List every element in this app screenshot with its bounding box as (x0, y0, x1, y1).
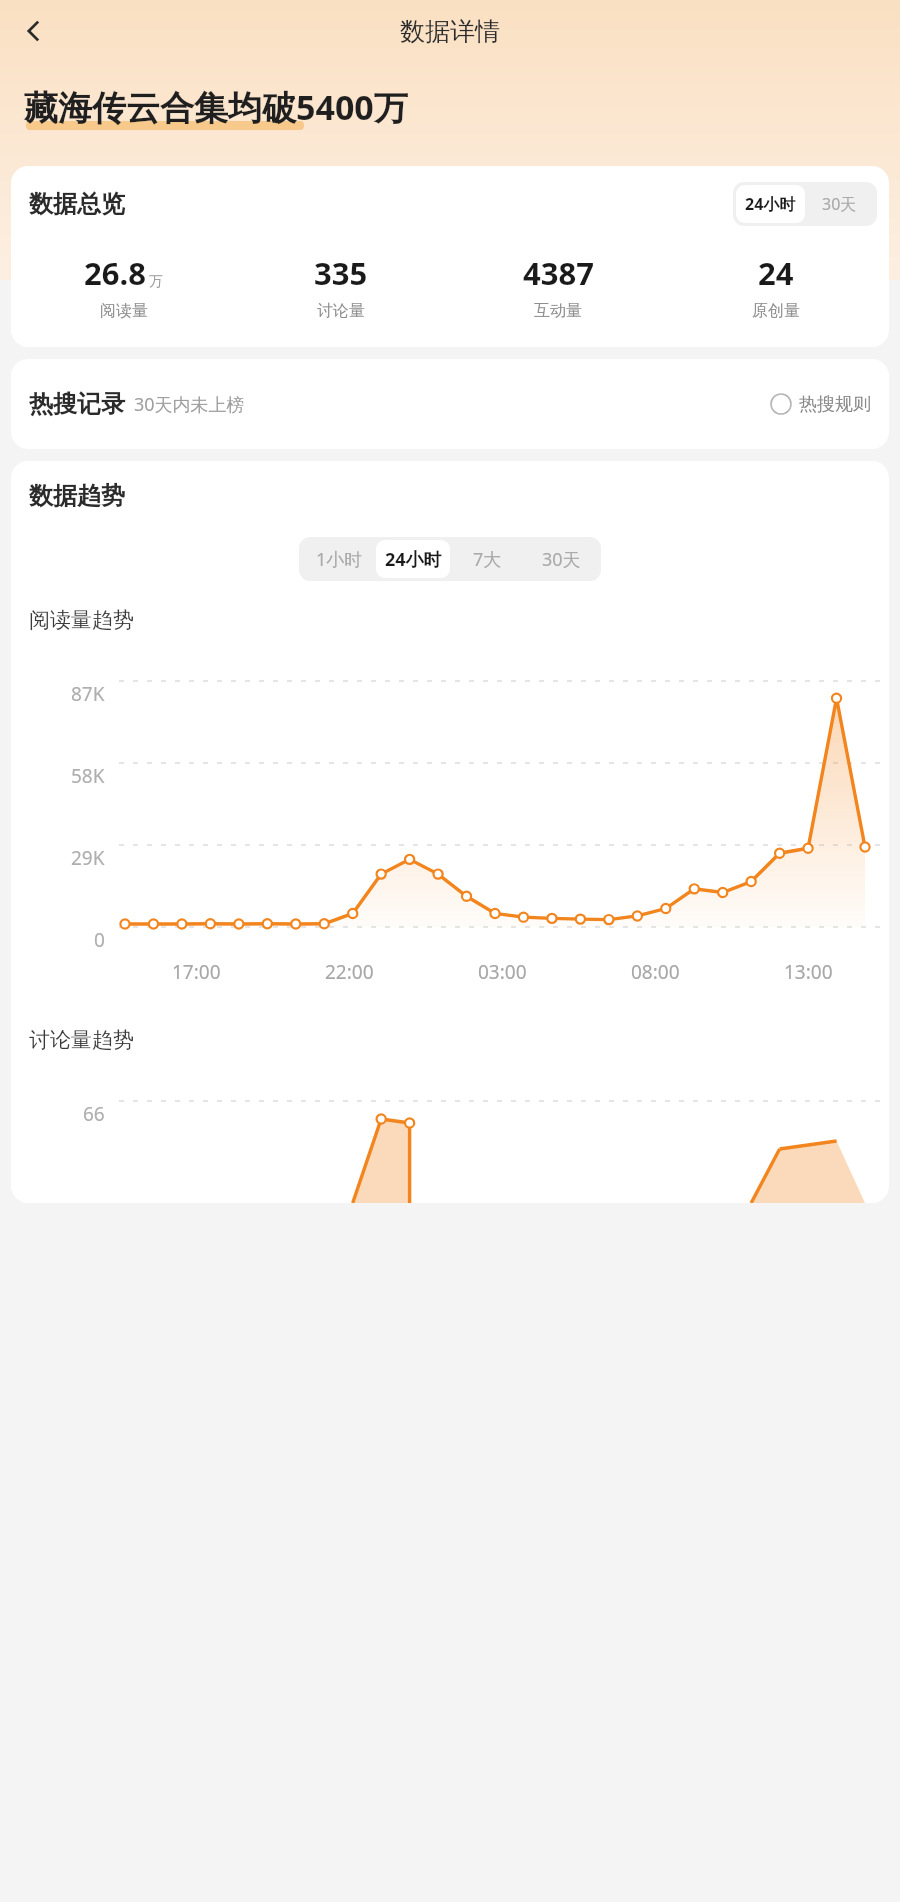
staticText: 66 (83, 1101, 105, 1127)
staticText: 22:00 (325, 959, 374, 985)
staticText: 热搜规则 (799, 393, 871, 416)
staticText: 335 (314, 252, 368, 294)
staticText: 4387 (523, 252, 594, 294)
staticText: 24小时 (385, 547, 442, 572)
staticText: 藏海传云合集均破5400万 (24, 84, 408, 130)
button[interactable]: 30天 (805, 185, 874, 223)
button[interactable]: 30天 (524, 540, 598, 578)
button[interactable]: 24小时 (736, 185, 805, 223)
staticText: 30天内未上榜 (134, 392, 245, 417)
staticText: 互动量 (534, 301, 582, 321)
staticText: 数据趋势 (29, 481, 125, 511)
staticText: 讨论量趋势 (29, 1027, 134, 1053)
staticText: 1小时 (316, 547, 363, 572)
staticText: 08:00 (631, 959, 680, 985)
staticText: 热搜记录 (29, 389, 125, 419)
staticText: 24 (758, 252, 794, 294)
staticText: 24小时 (745, 193, 796, 215)
staticText: 13:00 (784, 959, 833, 985)
button[interactable]: 热搜记录 (11, 359, 889, 449)
staticText: 原创量 (752, 301, 800, 321)
staticText: 17:00 (172, 959, 221, 985)
staticText: 阅读量 (100, 301, 148, 321)
staticText: 阅读量趋势 (29, 607, 134, 633)
staticText: 讨论量 (317, 301, 365, 321)
button[interactable]: Back (8, 5, 60, 57)
staticText: 26.8 (84, 252, 146, 294)
staticText: 29K (71, 845, 105, 871)
staticText: 数据总览 (29, 189, 125, 219)
staticText: 数据详情 (400, 16, 500, 47)
staticText: 万 (149, 273, 163, 291)
staticText: 30天 (542, 547, 581, 572)
staticText: 58K (71, 763, 105, 789)
button[interactable]: 7大 (450, 540, 524, 578)
staticText: 03:00 (478, 959, 527, 985)
button[interactable]: 1小时 (302, 540, 376, 578)
button[interactable]: 24小时 (376, 540, 450, 578)
staticText: 7大 (473, 547, 502, 572)
staticText: 87K (71, 681, 105, 707)
staticText: 30天 (822, 193, 857, 215)
staticText: 0 (94, 927, 105, 953)
other: Help (770, 393, 792, 415)
